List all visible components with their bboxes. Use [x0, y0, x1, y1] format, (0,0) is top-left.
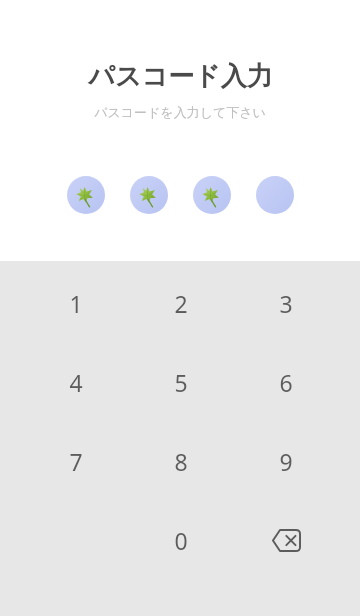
staticText: 2 — [174, 288, 188, 319]
staticText: パスコードを入力して下さい — [94, 104, 266, 120]
button[interactable]: 3 — [233, 264, 338, 343]
staticText: パスコード入力 — [88, 60, 273, 93]
button[interactable]: 2 — [128, 264, 233, 343]
button[interactable]: 7 — [23, 422, 128, 501]
button[interactable]: 8 — [128, 422, 233, 501]
button[interactable]: 9 — [233, 422, 338, 501]
staticText: 8 — [174, 446, 188, 477]
button[interactable]: 1 — [23, 264, 128, 343]
staticText: 0 — [174, 525, 188, 556]
staticText: 5 — [174, 367, 188, 398]
button[interactable]: 5 — [128, 343, 233, 422]
button[interactable]: 0 — [128, 501, 233, 580]
staticText: 3 — [279, 288, 293, 319]
button[interactable]: 6 — [233, 343, 338, 422]
staticText: 9 — [279, 446, 293, 477]
staticText: 7 — [69, 446, 83, 477]
staticText: 6 — [279, 367, 293, 398]
staticText: 4 — [69, 367, 83, 398]
button[interactable]: Backspace — [233, 501, 338, 580]
button[interactable]: 4 — [23, 343, 128, 422]
staticText: 1 — [69, 288, 83, 319]
